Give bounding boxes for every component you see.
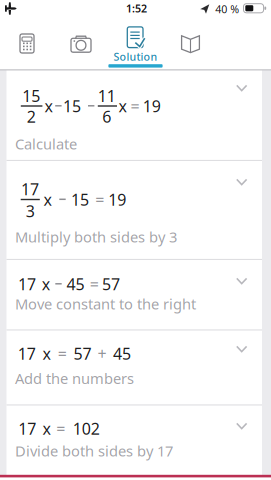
staticText: x: [42, 273, 50, 295]
staticText: Divide both sides by 17: [15, 441, 173, 460]
staticText: =: [95, 189, 104, 210]
button[interactable]: Glossary: [163, 20, 217, 70]
staticText: 1:52: [126, 1, 147, 15]
button[interactable]: 15: [6, 70, 262, 160]
button[interactable]: Calculator: [0, 20, 54, 70]
staticText: 3: [26, 200, 35, 222]
staticText: 17: [18, 343, 36, 364]
button[interactable]: 17: [6, 330, 262, 405]
button[interactable]: Solution: [108, 20, 163, 70]
staticText: =: [131, 95, 140, 117]
staticText: =: [58, 343, 67, 364]
staticText: 17: [21, 178, 39, 200]
staticText: 6: [102, 106, 111, 127]
staticText: 40 %: [215, 2, 239, 16]
staticText: =: [90, 273, 99, 295]
staticText: 15: [63, 95, 81, 117]
staticText: x: [118, 95, 126, 117]
button[interactable]: 17: [6, 160, 262, 259]
staticText: 17: [18, 273, 36, 295]
button[interactable]: 17: [6, 259, 262, 330]
staticText: 45: [113, 343, 131, 364]
staticText: 45: [66, 273, 84, 295]
staticText: Solution: [113, 49, 157, 64]
staticText: x: [42, 343, 50, 364]
staticText: 102: [73, 418, 100, 439]
staticText: 15: [71, 189, 89, 210]
staticText: +: [98, 343, 107, 364]
staticText: 19: [108, 189, 126, 210]
staticText: x: [43, 189, 51, 210]
staticText: 57: [102, 273, 120, 295]
staticText: 17: [18, 418, 36, 439]
staticText: Multiply both sides by 3: [15, 227, 177, 246]
staticText: x: [42, 418, 50, 439]
staticText: =: [56, 418, 65, 439]
staticText: 19: [143, 95, 161, 117]
button[interactable]: Camera: [54, 20, 108, 70]
staticText: 11: [98, 85, 116, 106]
staticText: 57: [73, 343, 91, 364]
staticText: 2: [27, 106, 36, 127]
staticText: x: [45, 95, 53, 117]
staticText: Move constant to the right: [15, 294, 196, 313]
button[interactable]: 17: [6, 405, 262, 475]
staticText: 15: [22, 85, 40, 106]
staticText: Calculate: [15, 134, 77, 153]
staticText: Add the numbers: [15, 368, 134, 388]
